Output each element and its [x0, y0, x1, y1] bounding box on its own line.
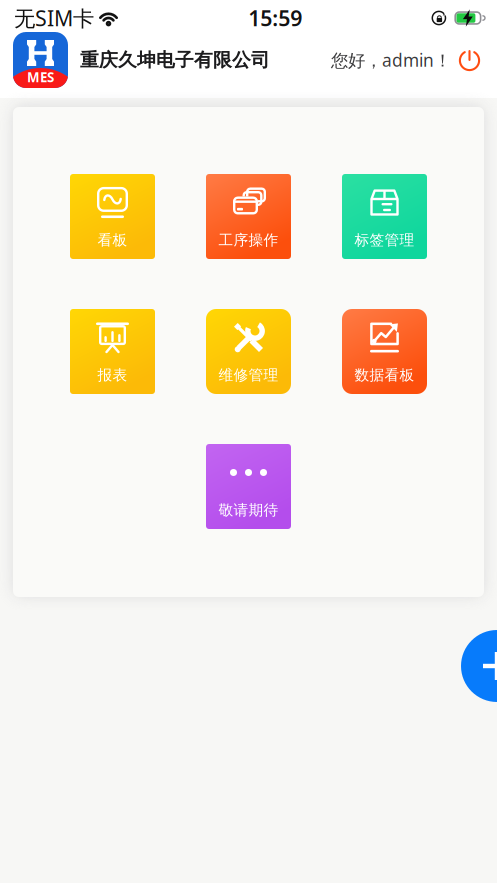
staticText: 15:59: [248, 4, 302, 32]
button[interactable]: 敬请期待: [206, 444, 291, 529]
staticText: 标签管理: [354, 231, 414, 249]
button[interactable]: 工序操作: [206, 174, 291, 259]
staticText: 无SIM卡: [14, 4, 94, 32]
button[interactable]: 维修管理: [206, 309, 291, 394]
button[interactable]: 报表: [70, 309, 155, 394]
staticText: 维修管理: [218, 366, 278, 384]
button[interactable]: 您好，admin！: [331, 48, 481, 71]
button[interactable]: 看板: [70, 174, 155, 259]
staticText: 工序操作: [218, 231, 278, 249]
staticText: 您好，admin！: [331, 48, 451, 71]
staticText: 重庆久坤电子有限公司: [80, 48, 270, 71]
staticText: 看板: [97, 231, 127, 249]
button[interactable]: 标签管理: [342, 174, 427, 259]
staticText: 报表: [97, 366, 127, 384]
staticText: 敬请期待: [218, 501, 278, 519]
staticText: MES: [27, 68, 54, 86]
staticText: 数据看板: [354, 366, 414, 384]
button[interactable]: 数据看板: [342, 309, 427, 394]
button[interactable]: Add: [461, 630, 497, 702]
button[interactable]: MES: [13, 32, 270, 88]
